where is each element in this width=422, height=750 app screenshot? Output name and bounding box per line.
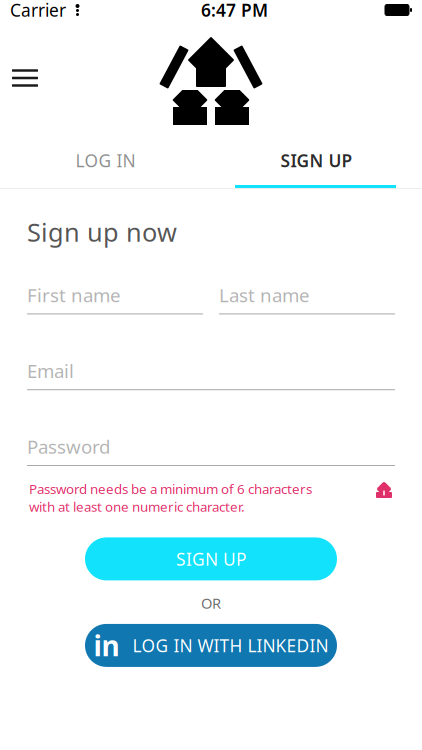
staticText: Last name bbox=[219, 283, 310, 307]
button[interactable]: Menu bbox=[8, 61, 42, 95]
staticText: in bbox=[93, 627, 119, 664]
staticText: First name bbox=[27, 283, 121, 307]
staticText: SIGN UP bbox=[176, 547, 246, 570]
button[interactable]: SIGN UP bbox=[85, 537, 337, 580]
button[interactable]: SIGN UP bbox=[211, 136, 422, 188]
staticText: Email bbox=[27, 358, 74, 383]
staticText: LOG IN WITH LINKEDIN bbox=[132, 634, 328, 657]
button[interactable]: in bbox=[85, 624, 337, 667]
staticText: SIGN UP bbox=[280, 149, 352, 172]
staticText: OR bbox=[201, 593, 221, 613]
button[interactable]: LOG IN bbox=[0, 136, 211, 188]
staticText: LOG IN bbox=[75, 149, 135, 172]
staticText: Sign up now bbox=[27, 215, 177, 249]
staticText: 6:47 PM bbox=[201, 0, 268, 21]
staticText: Carrier bbox=[10, 0, 66, 21]
staticText: Password needs be a minimum of 6 charact… bbox=[29, 480, 312, 515]
staticText: Password bbox=[27, 434, 110, 459]
